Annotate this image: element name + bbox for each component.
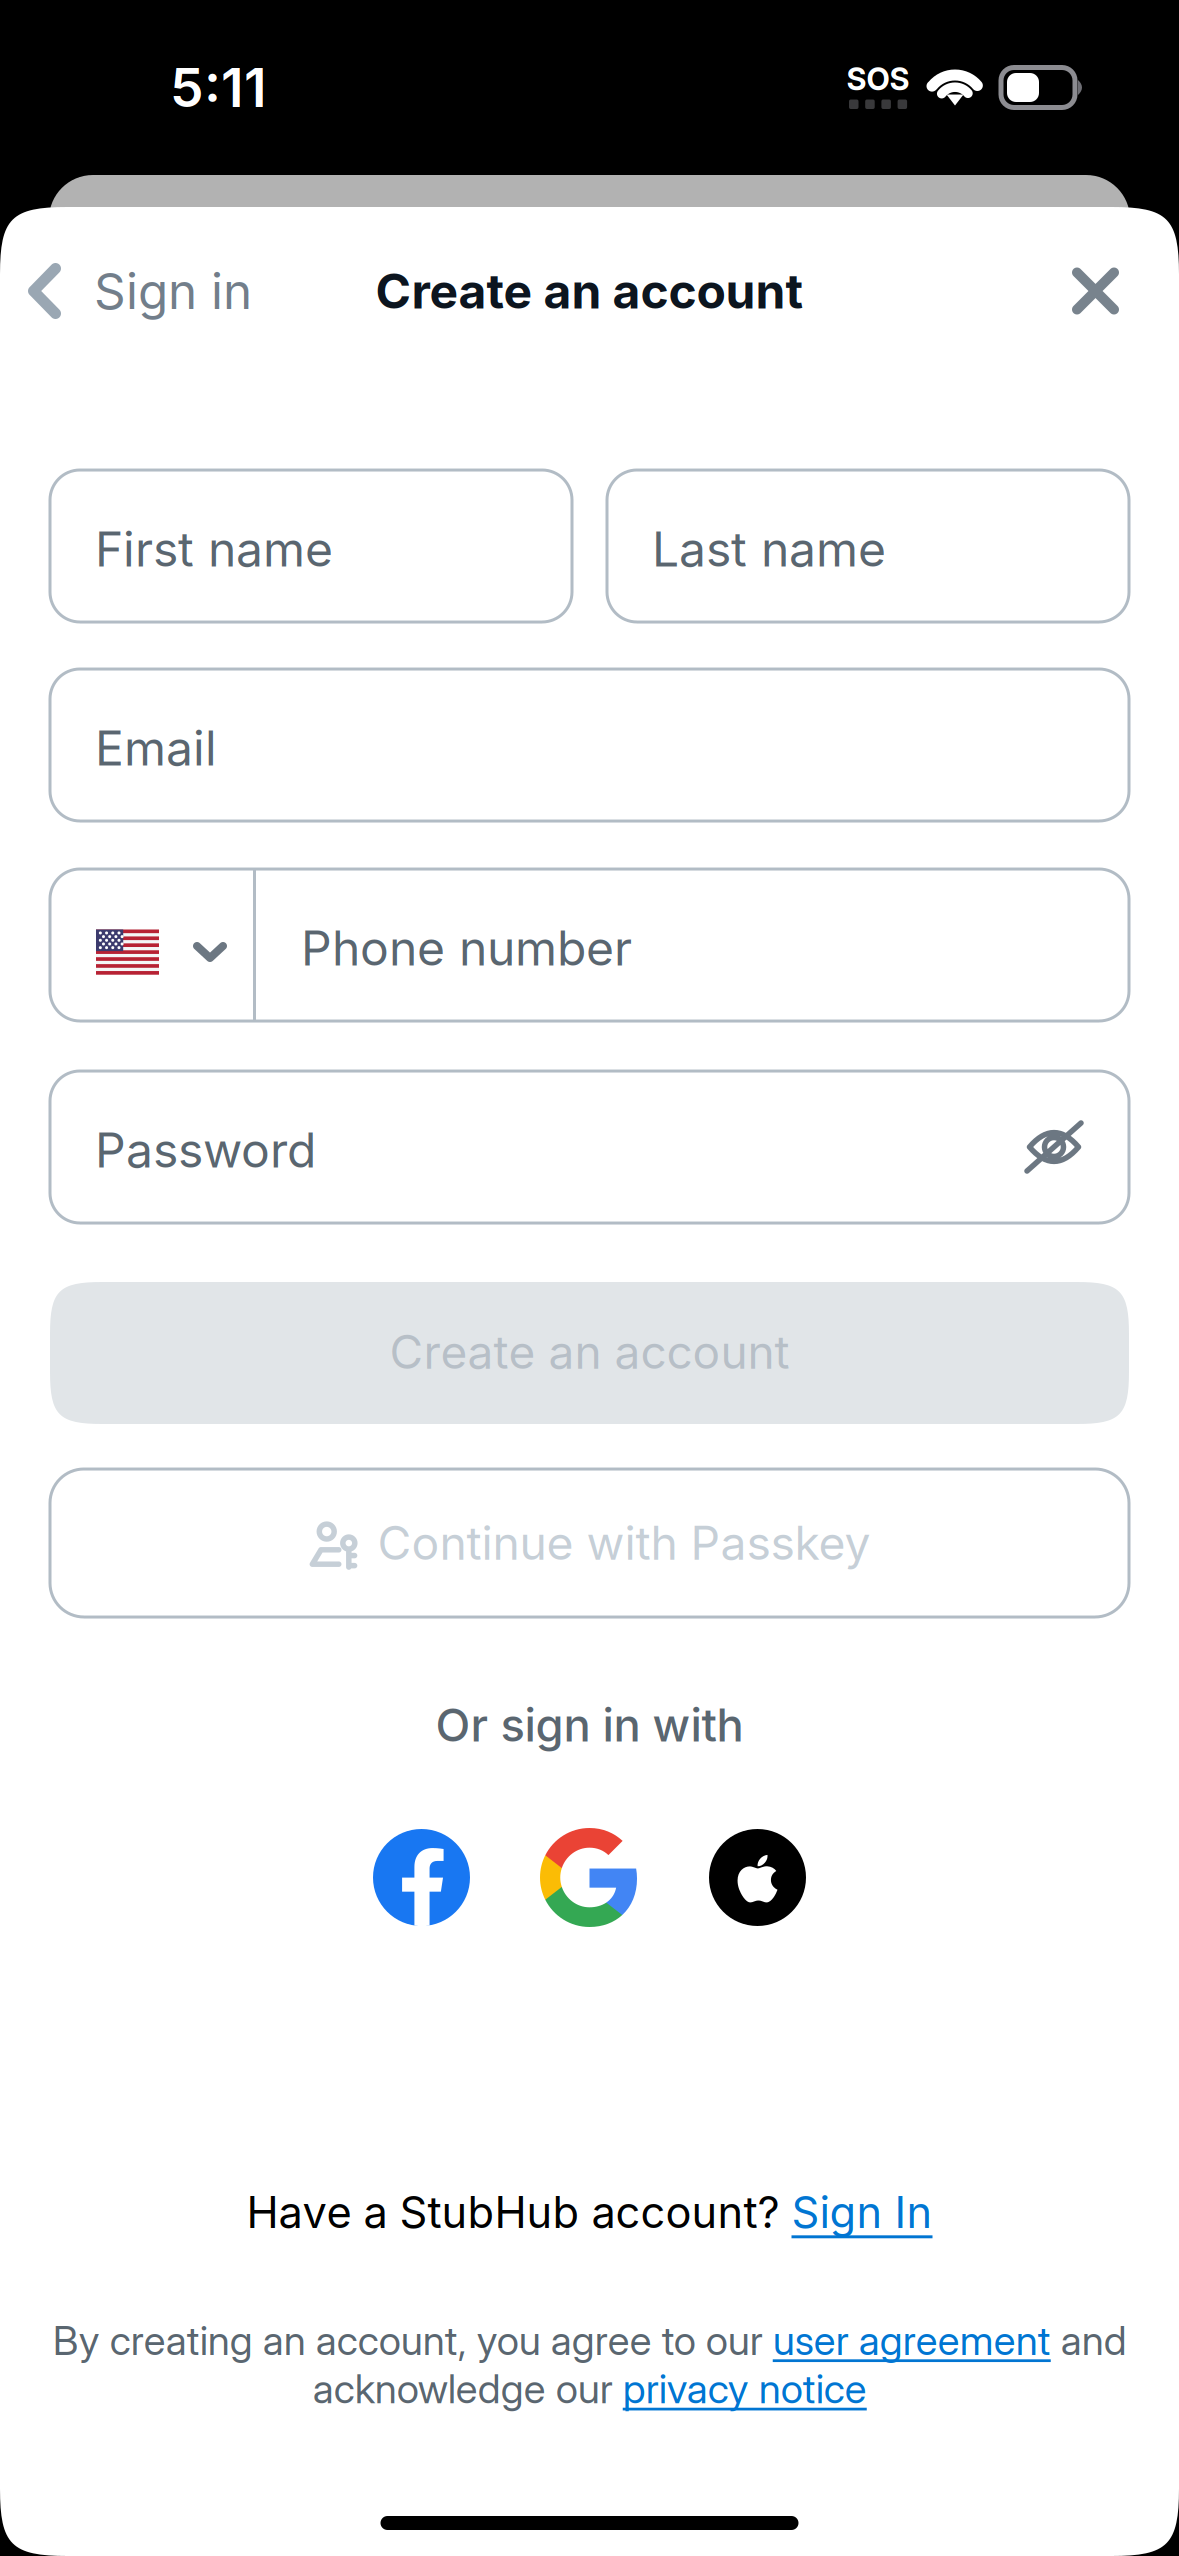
- staticText: Phone number: [301, 919, 632, 977]
- button[interactable]: Sign in with Google: [540, 1828, 639, 1927]
- button[interactable]: Show password: [993, 1089, 1129, 1205]
- button[interactable]: Create an account: [50, 1282, 1129, 1424]
- button[interactable]: Sign in: [0, 235, 272, 347]
- staticText: 5:11: [170, 55, 267, 120]
- staticText: First name: [95, 520, 333, 578]
- staticText: Create an account: [389, 1324, 789, 1380]
- staticText: Have a StubHub account?: [246, 2186, 791, 2238]
- staticText: Create an account: [375, 262, 803, 320]
- button[interactable]: Have a StubHub account?: [246, 2183, 932, 2241]
- staticText: Sign in: [94, 261, 252, 321]
- button[interactable]: Sign in with Facebook: [373, 1829, 470, 1926]
- staticText: By creating an account, you agree to our…: [52, 2316, 1126, 2413]
- staticText: SOS: [846, 60, 909, 98]
- staticText: Email: [95, 719, 217, 777]
- staticText: Or sign in with: [435, 1698, 743, 1752]
- button[interactable]: Continue with Passkey: [50, 1469, 1129, 1617]
- button[interactable]: Close: [1048, 237, 1179, 344]
- staticText: Last name: [652, 520, 886, 578]
- staticText: Continue with Passkey: [377, 1515, 870, 1571]
- staticText: Password: [95, 1121, 316, 1179]
- button[interactable]: Sign in with Apple: [709, 1829, 806, 1926]
- button[interactable]: Select country code: [50, 869, 253, 1021]
- staticText: Sign In: [791, 2186, 932, 2238]
